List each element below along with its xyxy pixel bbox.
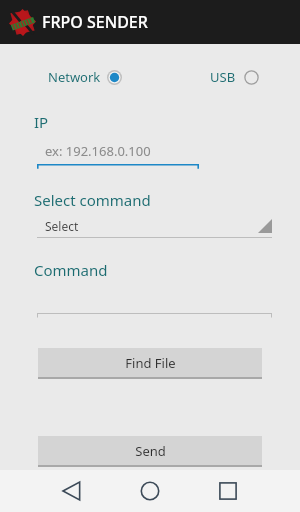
button[interactable]: Network [46,64,124,90]
staticText: Select [45,218,79,234]
button[interactable]: USB [208,64,261,90]
staticText: ex: 192.168.0.100 [45,142,151,160]
button[interactable]: Select command dropdown [37,218,272,238]
other: App logo [9,9,36,36]
staticText: USB [210,68,236,86]
button[interactable]: Send [38,436,262,465]
staticText: Network [48,68,101,86]
staticText: Select command [34,190,151,210]
button[interactable]: ex: 192.168.0.100 [37,142,199,170]
button[interactable]: Find File [38,348,262,377]
button[interactable]: Back [57,476,87,506]
staticText: IP [34,112,49,132]
button[interactable]: Command input [37,313,272,319]
staticText: Command [34,260,108,280]
staticText: FRPO SENDER [42,11,148,33]
staticText: Find File [125,354,176,372]
button[interactable]: Recents [213,476,243,506]
button[interactable]: Home [135,476,165,506]
staticText: Send [135,442,166,460]
